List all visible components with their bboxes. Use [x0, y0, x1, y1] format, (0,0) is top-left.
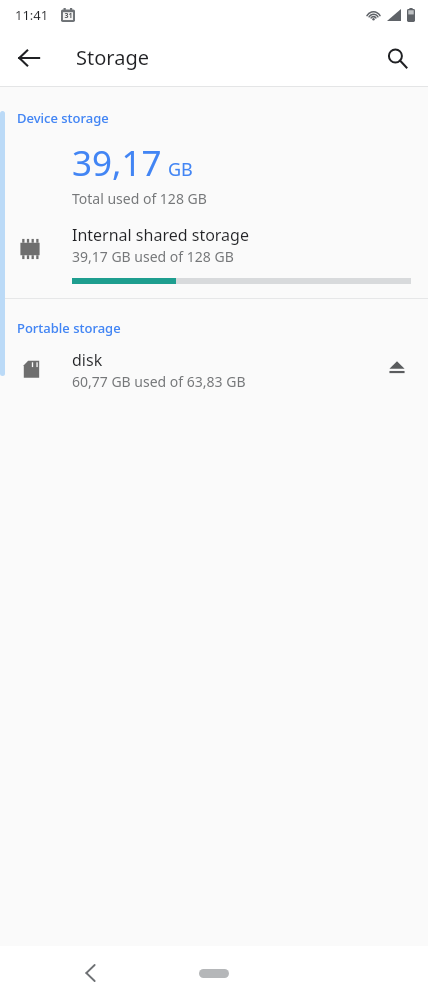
- staticText: 39,17 GB used of 128 GB: [72, 247, 234, 266]
- button[interactable]: Internal shared storage: [0, 224, 428, 284]
- button[interactable]: Eject: [374, 344, 420, 390]
- staticText: Internal shared storage: [72, 224, 249, 246]
- staticText: 11:41: [15, 6, 49, 24]
- button[interactable]: Back: [6, 35, 52, 81]
- staticText: 39,17: [72, 139, 162, 187]
- button[interactable]: disk: [0, 349, 428, 395]
- button[interactable]: Search: [374, 35, 420, 81]
- staticText: Portable storage: [17, 319, 121, 337]
- staticText: GB: [168, 157, 193, 182]
- staticText: 31: [64, 11, 73, 21]
- button[interactable]: Home: [184, 955, 244, 991]
- staticText: Total used of 128 GB: [72, 189, 207, 208]
- staticText: 60,77 GB used of 63,83 GB: [72, 372, 246, 391]
- button[interactable]: Back: [68, 951, 112, 995]
- staticText: Storage: [76, 44, 149, 71]
- staticText: Device storage: [17, 109, 109, 127]
- staticText: disk: [72, 349, 103, 371]
